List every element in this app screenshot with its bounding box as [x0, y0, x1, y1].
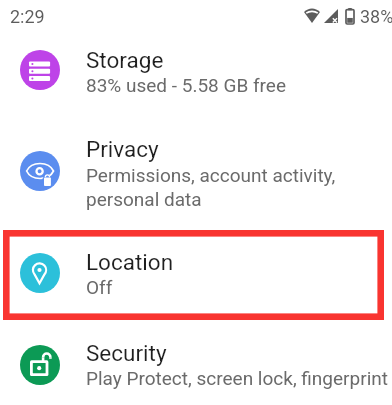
button[interactable]: Storage icon [0, 42, 392, 104]
button[interactable]: Security icon [0, 336, 392, 397]
other: Privacy icon [20, 151, 60, 191]
staticText: Location [86, 249, 174, 275]
staticText: Off [86, 276, 113, 298]
staticText: Storage [86, 47, 164, 73]
staticText: 38% [360, 6, 392, 27]
staticText: 2:29 [10, 6, 45, 27]
staticText: Privacy [86, 136, 159, 162]
staticText: 83% used - 5.58 GB free [86, 74, 287, 96]
button[interactable]: Privacy icon [0, 132, 392, 218]
button[interactable]: Location icon [0, 245, 392, 306]
staticText: Play Protect, screen lock, fingerprint [86, 367, 388, 389]
other: Security icon [20, 345, 60, 385]
staticText: personal data [86, 188, 202, 210]
staticText: Security [86, 340, 167, 366]
other: Storage icon [20, 50, 60, 90]
staticText: Permissions, account activity, [86, 164, 336, 186]
other: Location icon [20, 253, 60, 293]
